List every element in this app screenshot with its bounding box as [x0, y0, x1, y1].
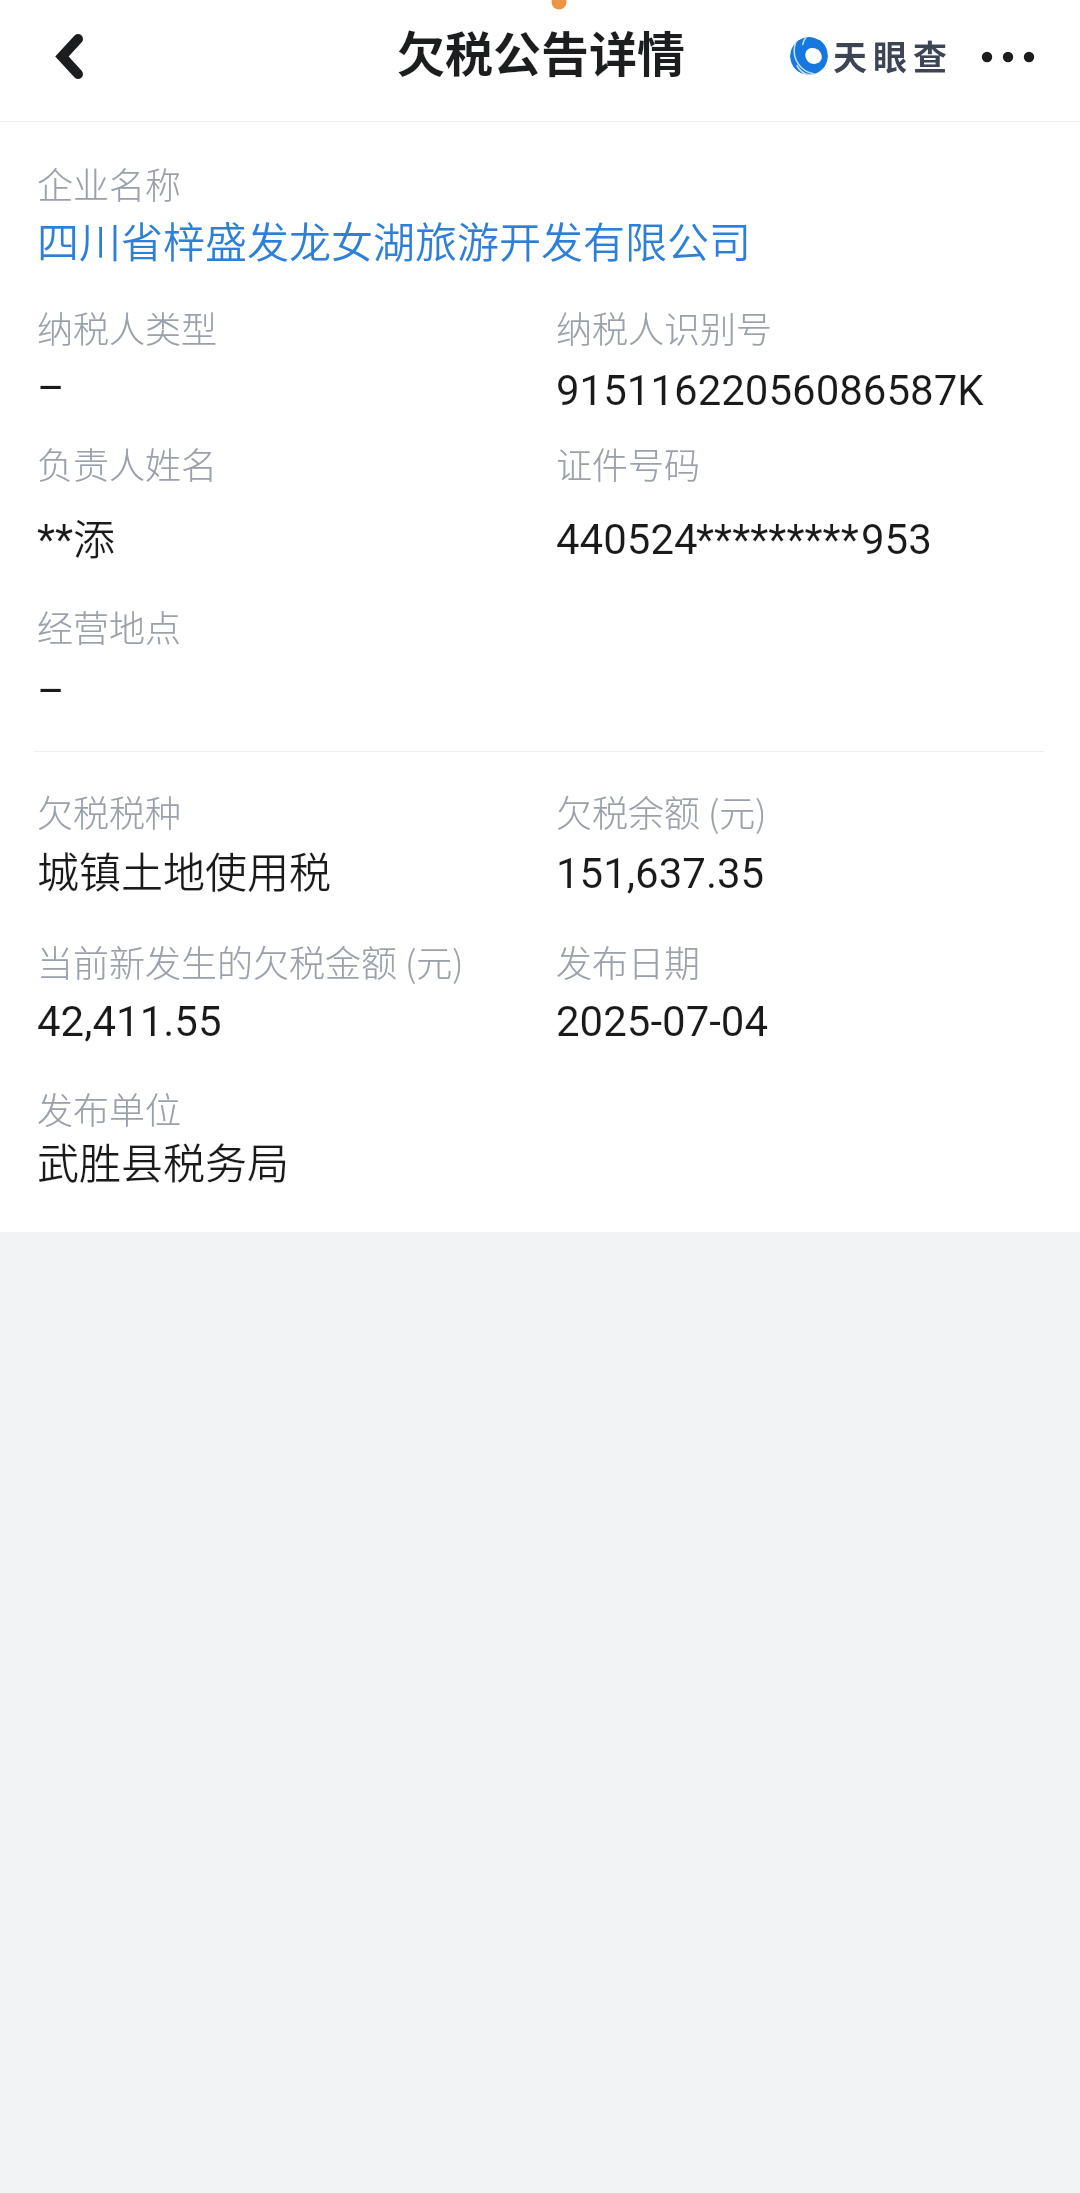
staticText: 953: [861, 515, 932, 564]
staticText: 添: [73, 506, 116, 567]
staticText: 151,637.35: [556, 849, 765, 898]
staticText: 91511622056086587K: [556, 366, 984, 415]
staticText: 42,411.55: [37, 997, 222, 1046]
button[interactable]: Back: [22, 13, 118, 109]
staticText: 欠税税种: [37, 785, 182, 837]
staticText: 欠税余额 (元): [556, 785, 767, 837]
staticText: 440524: [556, 515, 698, 564]
staticText: 天眼查: [833, 31, 953, 80]
staticText: 2025-07-04: [556, 997, 769, 1046]
button[interactable]: 天眼查: [790, 31, 955, 80]
staticText: 武胜县税务局: [37, 1130, 290, 1191]
staticText: 纳税人识别号: [556, 301, 773, 353]
staticText: 证件号码: [556, 437, 701, 489]
staticText: 欠税公告详情: [397, 16, 686, 86]
staticText: 纳税人类型: [37, 301, 218, 353]
staticText: *********: [696, 515, 859, 564]
staticText: –: [37, 364, 65, 413]
staticText: 经营地点: [37, 600, 182, 652]
staticText: 当前新发生的欠税金额 (元): [37, 935, 464, 987]
staticText: 四川省梓盛发龙女湖旅游开发有限公司: [37, 209, 752, 270]
staticText: 城镇土地使用税: [37, 839, 332, 900]
staticText: –: [37, 667, 65, 716]
staticText: 发布日期: [556, 935, 701, 987]
staticText: 发布单位: [37, 1082, 182, 1134]
button[interactable]: More options: [970, 22, 1054, 92]
staticText: 负责人姓名: [37, 437, 218, 489]
staticText: 企业名称: [37, 157, 182, 209]
staticText: **: [37, 515, 74, 564]
